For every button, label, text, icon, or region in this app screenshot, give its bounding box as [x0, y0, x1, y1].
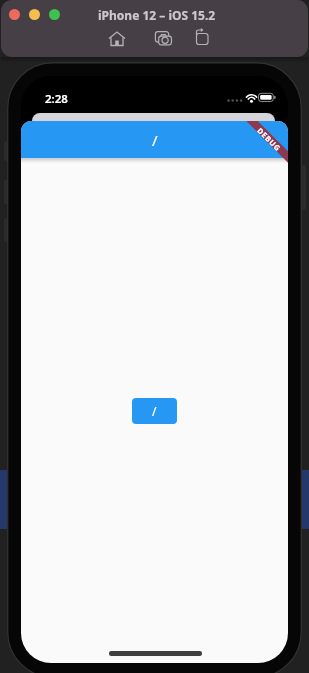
- button[interactable]: [107, 29, 127, 49]
- button[interactable]: [9, 9, 20, 20]
- button[interactable]: [49, 9, 60, 20]
- staticText: DEBUG: [257, 126, 283, 152]
- button[interactable]: /: [132, 398, 177, 424]
- staticText: iPhone 12 – iOS 15.2: [98, 7, 216, 23]
- staticText: /: [152, 403, 157, 419]
- button[interactable]: /: [21, 121, 288, 158]
- button[interactable]: [153, 28, 175, 50]
- staticText: 2:28: [45, 91, 68, 107]
- staticText: /: [152, 130, 158, 150]
- button[interactable]: [193, 28, 213, 48]
- button[interactable]: [29, 9, 40, 20]
